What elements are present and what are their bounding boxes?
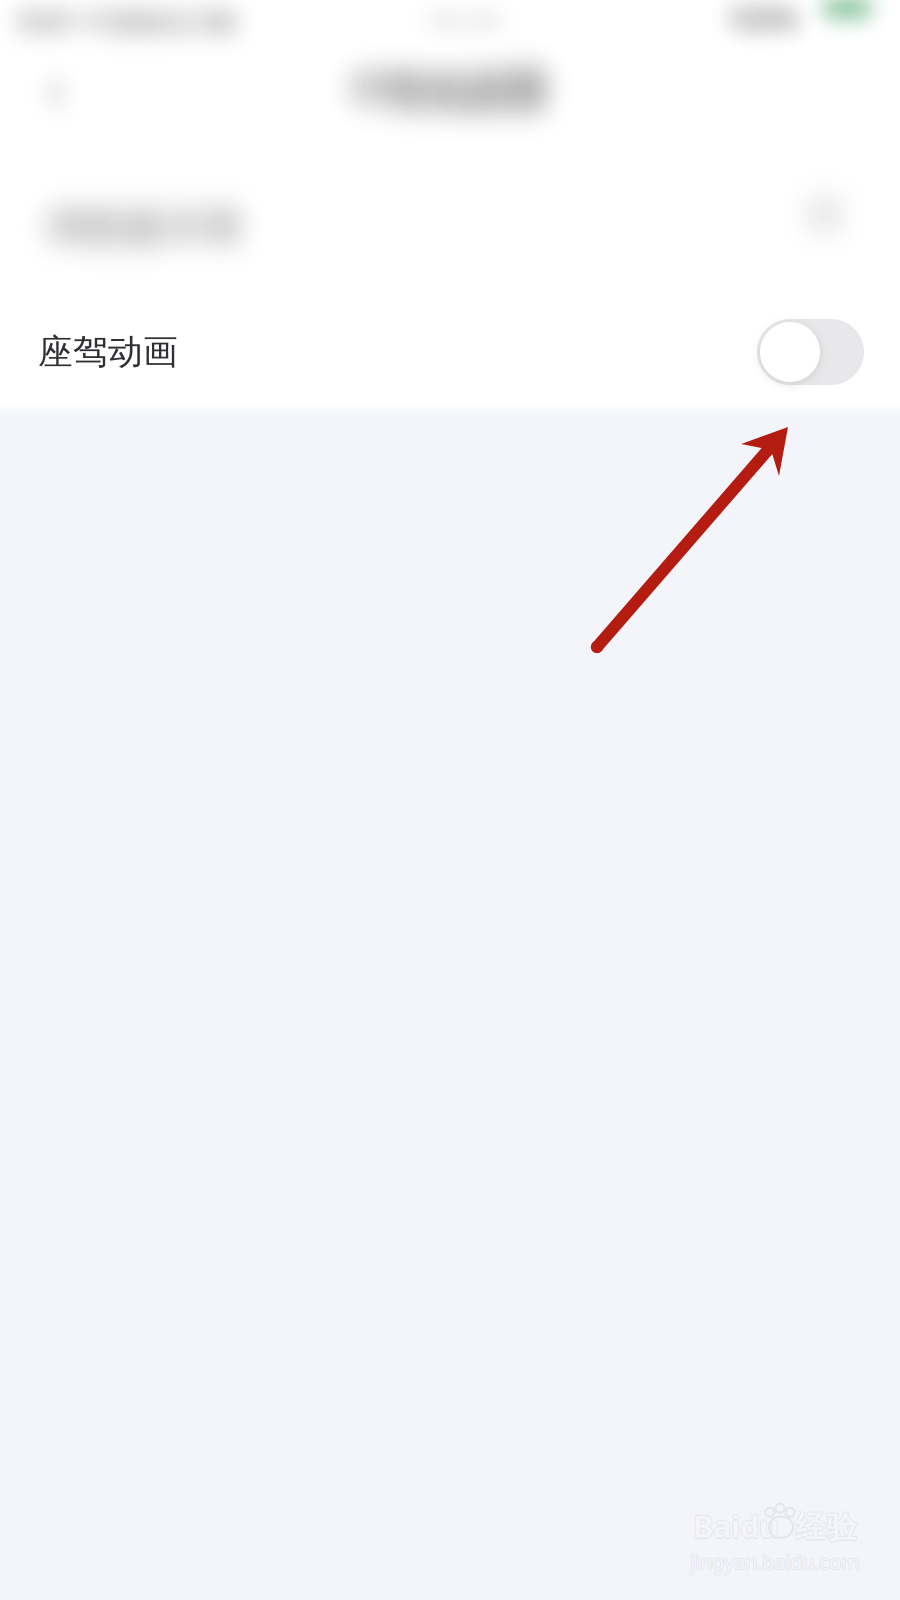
staticText: jingyan.baidu.com: [690, 1549, 860, 1576]
staticText: Baidu 经验: [693, 1507, 857, 1548]
staticText: jingyan.baidu.com: [690, 1548, 860, 1575]
staticText: 座驾动画: [38, 331, 178, 373]
staticText: jingyan.baidu.com: [690, 1547, 860, 1574]
staticText: Baidu 经验: [693, 1506, 857, 1546]
button[interactable]: 座驾动画: [0, 290, 900, 414]
staticText: jingyan.baidu.com: [689, 1548, 859, 1575]
staticText: Baidu 经验: [694, 1506, 858, 1546]
staticText: jingyan.baidu.com: [691, 1548, 861, 1575]
staticText: Baidu 经验: [693, 1504, 857, 1545]
staticText: Baidu 经验: [692, 1506, 856, 1546]
